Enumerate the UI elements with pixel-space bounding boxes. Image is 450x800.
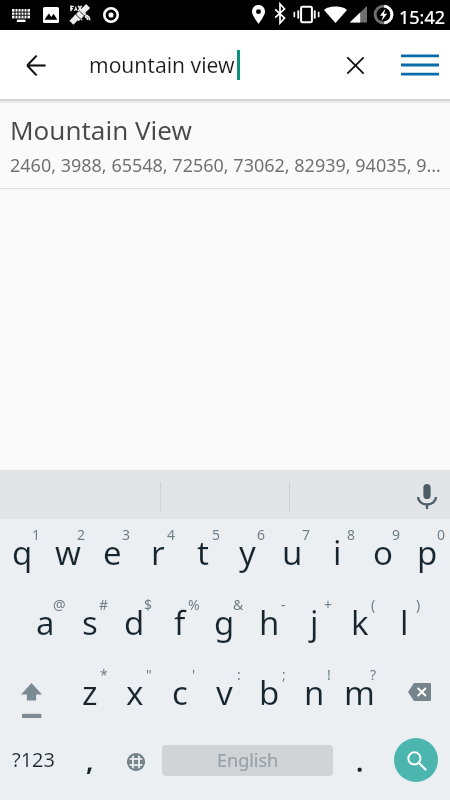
button[interactable]: 6 bbox=[225, 519, 270, 589]
staticText: i bbox=[333, 530, 342, 575]
staticText: # bbox=[99, 595, 109, 614]
button[interactable]: , bbox=[67, 729, 113, 800]
button[interactable]: Mountain View bbox=[0, 104, 450, 188]
button[interactable]: 2 bbox=[45, 519, 90, 589]
button[interactable]: Back bbox=[14, 43, 58, 87]
button[interactable]: Clear bbox=[333, 43, 377, 87]
button[interactable]: : bbox=[202, 659, 247, 729]
staticText: d bbox=[124, 600, 145, 645]
button[interactable]: 3 bbox=[90, 519, 135, 589]
staticText: l bbox=[400, 600, 409, 645]
staticText: 8 bbox=[347, 525, 356, 544]
button[interactable]: # bbox=[67, 589, 112, 659]
button[interactable]: Backspace bbox=[382, 659, 450, 729]
button[interactable]: Change language bbox=[113, 729, 158, 800]
staticText: 6 bbox=[257, 525, 266, 544]
staticText: 3 bbox=[122, 525, 131, 544]
staticText: ? bbox=[370, 665, 377, 684]
staticText: * bbox=[100, 665, 108, 684]
staticText: y bbox=[239, 530, 256, 575]
button[interactable]: . bbox=[337, 729, 382, 800]
staticText: 7 bbox=[302, 525, 311, 544]
button[interactable]: ) bbox=[382, 589, 427, 659]
staticText: mountain view bbox=[89, 51, 235, 80]
button[interactable]: $ bbox=[112, 589, 157, 659]
button[interactable]: + bbox=[292, 589, 337, 659]
staticText: s bbox=[82, 600, 98, 645]
button[interactable]: % bbox=[157, 589, 202, 659]
staticText: . bbox=[356, 744, 364, 779]
staticText: , bbox=[86, 743, 94, 778]
button[interactable]: 8 bbox=[315, 519, 360, 589]
button[interactable]: 9 bbox=[360, 519, 405, 589]
button[interactable]: English bbox=[162, 745, 333, 776]
button[interactable]: 5 bbox=[180, 519, 225, 589]
staticText: ) bbox=[416, 595, 421, 614]
staticText: a bbox=[36, 600, 55, 645]
button[interactable]: " bbox=[112, 659, 157, 729]
button[interactable]: * bbox=[68, 659, 112, 729]
staticText: j bbox=[310, 600, 319, 645]
staticText: q bbox=[12, 530, 33, 575]
button[interactable]: Shift bbox=[0, 659, 68, 729]
button[interactable]: ( bbox=[337, 589, 382, 659]
button[interactable]: ?123 bbox=[0, 729, 67, 800]
button[interactable]: & bbox=[202, 589, 247, 659]
staticText: h bbox=[259, 600, 280, 645]
staticText: English bbox=[217, 748, 279, 773]
button[interactable]: ? bbox=[337, 659, 382, 729]
staticText: r bbox=[151, 530, 165, 575]
staticText: 4 bbox=[167, 525, 176, 544]
staticText: o bbox=[373, 530, 393, 575]
button[interactable]: 4 bbox=[135, 519, 180, 589]
staticText: b bbox=[259, 670, 280, 715]
staticText: z bbox=[82, 670, 98, 715]
staticText: 9 bbox=[392, 525, 401, 544]
staticText: : bbox=[237, 665, 241, 684]
staticText: g bbox=[214, 600, 235, 645]
staticText: k bbox=[351, 600, 369, 645]
button[interactable]: 1 bbox=[0, 519, 45, 589]
staticText: m bbox=[344, 670, 375, 715]
staticText: u bbox=[282, 530, 303, 575]
staticText: p bbox=[417, 530, 438, 575]
staticText: $ bbox=[144, 595, 153, 614]
staticText: v bbox=[216, 670, 233, 715]
staticText: 0 bbox=[437, 525, 446, 544]
staticText: x bbox=[126, 670, 144, 715]
button[interactable]: ' bbox=[157, 659, 202, 729]
staticText: 5 bbox=[212, 525, 221, 544]
staticText: - bbox=[281, 595, 286, 614]
staticText: w bbox=[55, 530, 81, 575]
staticText: f bbox=[174, 600, 186, 645]
staticText: + bbox=[324, 595, 333, 614]
staticText: ?123 bbox=[12, 746, 55, 773]
staticText: ; bbox=[282, 665, 286, 684]
button[interactable]: - bbox=[247, 589, 292, 659]
staticText: e bbox=[103, 530, 122, 575]
staticText: ( bbox=[371, 595, 376, 614]
staticText: % bbox=[188, 595, 200, 614]
staticText: c bbox=[172, 670, 188, 715]
staticText: t bbox=[197, 530, 209, 575]
staticText: @ bbox=[53, 595, 66, 614]
staticText: n bbox=[304, 670, 325, 715]
staticText: & bbox=[233, 595, 244, 614]
staticText: ! bbox=[327, 665, 331, 684]
staticText: 2460, 3988, 65548, 72560, 73062, 82939, … bbox=[10, 153, 441, 178]
staticText: 2 bbox=[77, 525, 86, 544]
button[interactable]: 0 bbox=[405, 519, 450, 589]
staticText: Mountain View bbox=[10, 112, 192, 147]
button[interactable]: Search bbox=[394, 738, 438, 782]
button[interactable]: ; bbox=[247, 659, 292, 729]
staticText: ' bbox=[192, 665, 196, 684]
button[interactable]: @ bbox=[23, 589, 67, 659]
staticText: 15:42 bbox=[399, 5, 446, 30]
button[interactable]: 7 bbox=[270, 519, 315, 589]
button[interactable]: Menu bbox=[396, 41, 444, 89]
staticText: " bbox=[146, 665, 152, 684]
button[interactable]: Voice input bbox=[405, 473, 449, 517]
staticText: 1 bbox=[32, 525, 41, 544]
button[interactable]: ! bbox=[292, 659, 337, 729]
